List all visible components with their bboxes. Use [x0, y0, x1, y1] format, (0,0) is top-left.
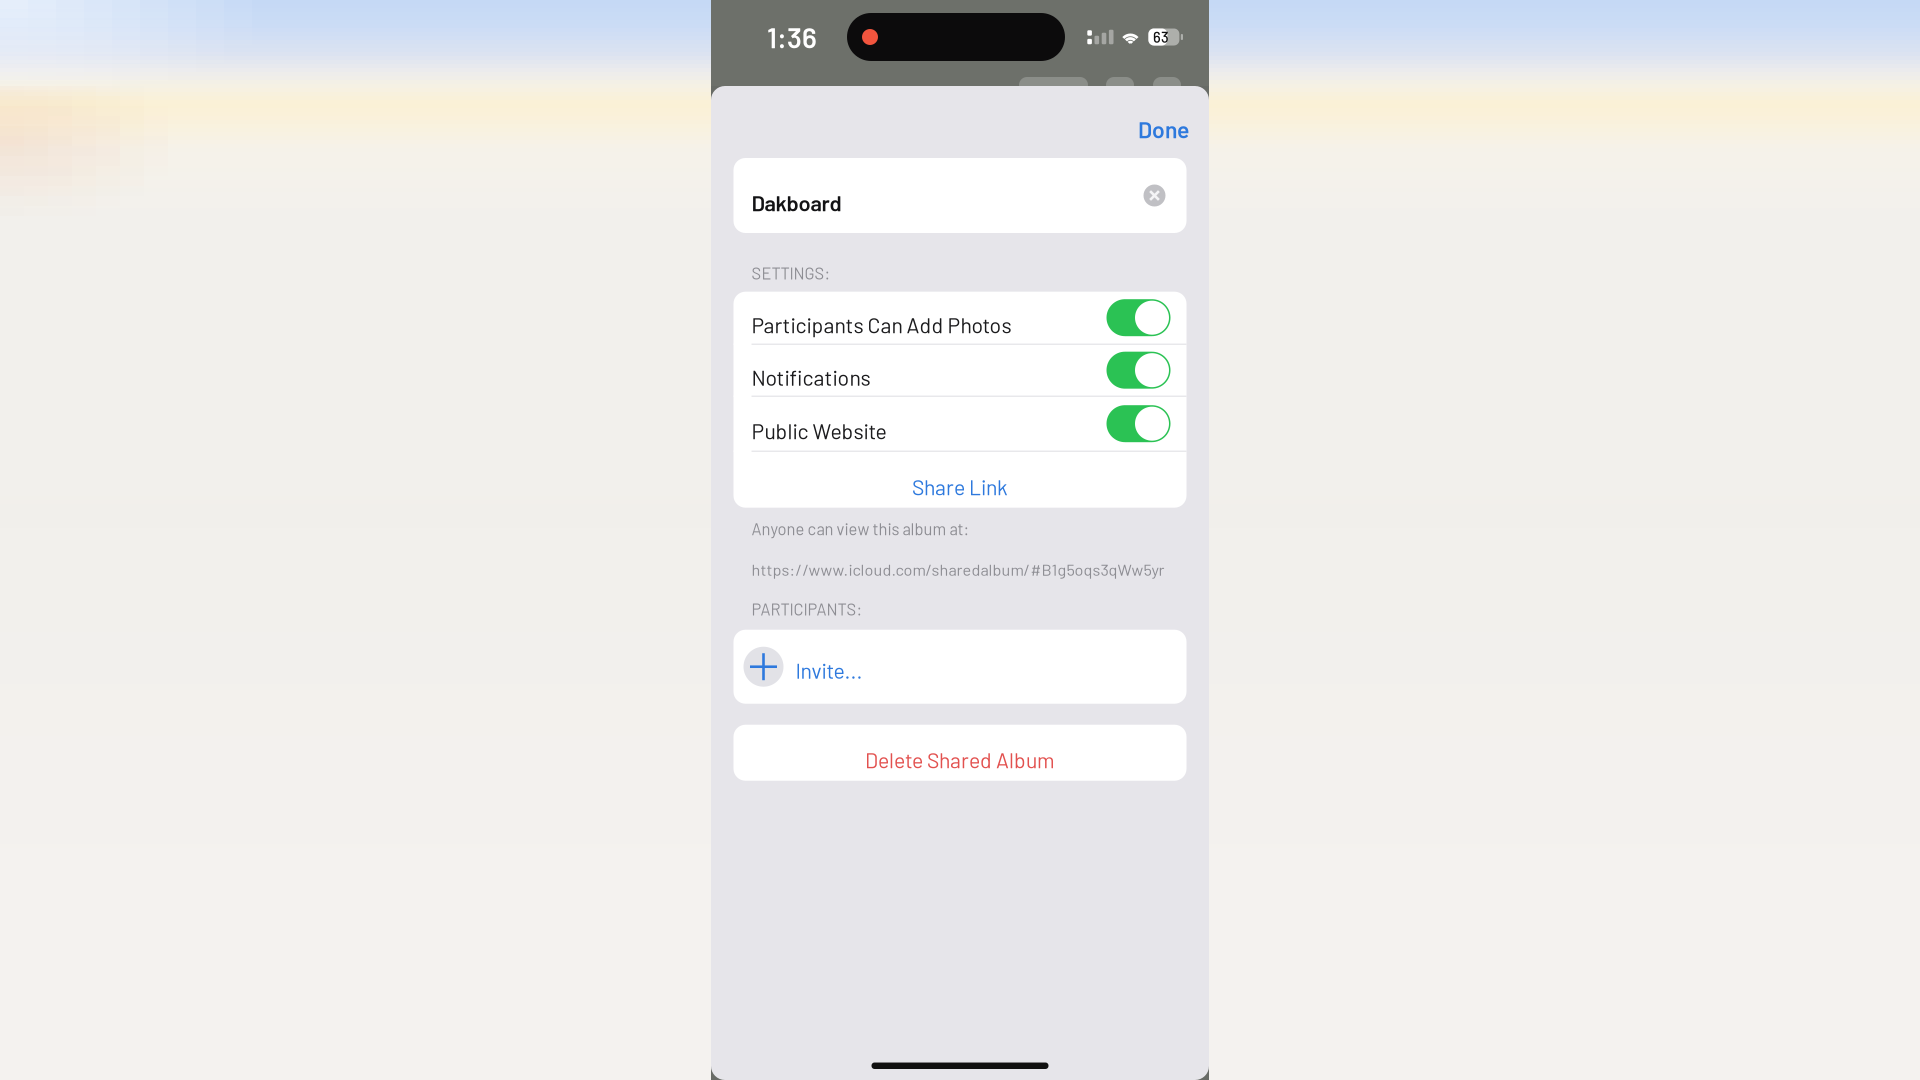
button[interactable]: Share Link [733, 452, 1186, 508]
staticText: Participants Can Add Photos [751, 312, 1011, 337]
staticText: Invite... [795, 657, 862, 683]
staticText: Public Website [751, 418, 886, 443]
staticText: Dakboard [751, 189, 841, 216]
staticText: Anyone can view this album at: [751, 519, 969, 538]
button[interactable]: Invite... [711, 630, 1209, 704]
staticText: Done [1138, 115, 1189, 143]
staticText: https://www.icloud.com/sharedalbum/#B1g5… [751, 559, 1164, 579]
button[interactable]: Done [1127, 92, 1200, 152]
button[interactable]: Notifications [733, 345, 1186, 396]
staticText: 1:36 [767, 20, 817, 54]
button[interactable]: Participants Can Add Photos [733, 292, 1186, 344]
staticText: Delete Shared Album [865, 747, 1055, 772]
button[interactable]: Public Website [733, 397, 1186, 451]
button[interactable]: Delete Shared Album [711, 725, 1209, 781]
staticText: SETTINGS: [751, 263, 830, 283]
button[interactable]: Clear album name [1143, 184, 1165, 206]
staticText: Notifications [751, 364, 870, 390]
staticText: PARTICIPANTS: [751, 599, 862, 619]
staticText: Share Link [912, 474, 1008, 499]
staticText: 63 [1153, 28, 1169, 46]
